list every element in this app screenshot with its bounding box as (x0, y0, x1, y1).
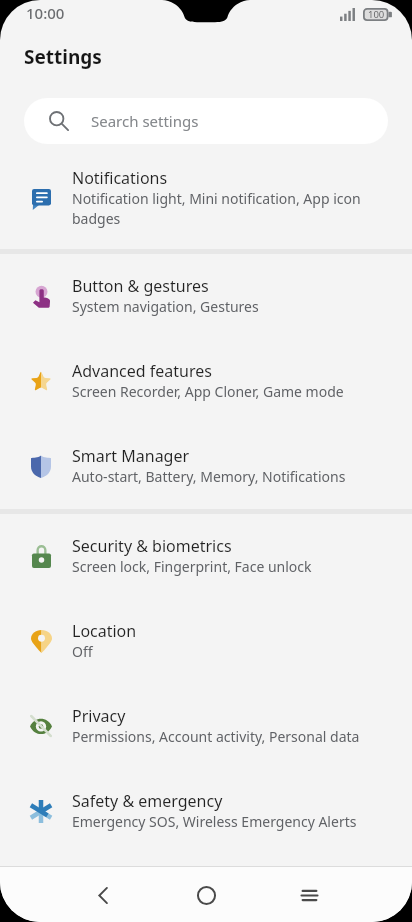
button[interactable]: Smart Manager (0, 422, 412, 508)
button[interactable]: Search settings (24, 98, 388, 144)
button[interactable]: Safety & emergency (0, 767, 412, 853)
button[interactable]: Advanced features (0, 337, 412, 423)
button[interactable]: Location (0, 597, 412, 683)
button[interactable]: Back (78, 870, 128, 920)
button[interactable]: Recent apps (284, 870, 334, 920)
staticText: Screen Recorder, App Cloner, Game mode (72, 382, 344, 401)
staticText: Off (72, 642, 93, 661)
staticText: Notifications (72, 167, 168, 189)
staticText: System navigation, Gestures (72, 297, 259, 316)
staticText: Auto-start, Battery, Memory, Notificatio… (72, 467, 346, 486)
staticText: 100 (368, 8, 385, 21)
button[interactable]: Privacy (0, 682, 412, 768)
button[interactable]: Security & biometrics (0, 512, 412, 598)
button[interactable]: Home (181, 870, 231, 920)
staticText: Location (72, 620, 137, 642)
staticText: Permissions, Account activity, Personal … (72, 727, 360, 746)
staticText: Privacy (72, 705, 126, 727)
staticText: Emergency SOS, Wireless Emergency Alerts (72, 812, 357, 831)
staticText: 10:00 (26, 3, 65, 23)
staticText: Screen lock, Fingerprint, Face unlock (72, 557, 312, 576)
button[interactable]: Notifications (0, 144, 412, 251)
button[interactable]: Button & gestures (0, 252, 412, 338)
staticText: Notification light, Mini notification, A… (72, 189, 368, 229)
staticText: Search settings (91, 111, 199, 131)
staticText: Settings (24, 44, 102, 70)
staticText: Security & biometrics (72, 535, 232, 557)
staticText: Button & gestures (72, 275, 209, 297)
staticText: Safety & emergency (72, 790, 223, 812)
staticText: Advanced features (72, 360, 212, 382)
staticText: Smart Manager (72, 445, 190, 467)
